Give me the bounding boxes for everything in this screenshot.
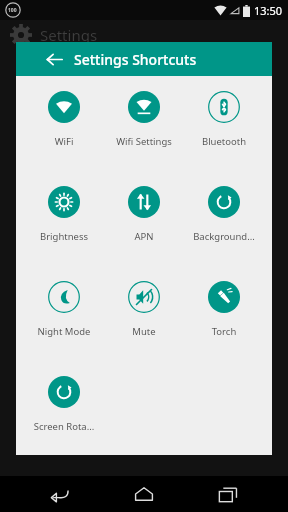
button[interactable]: Mute	[104, 273, 184, 368]
staticText: Screen Rota...	[25, 420, 103, 433]
button[interactable]: Home	[120, 476, 168, 512]
staticText: 13:50	[254, 3, 283, 18]
button[interactable]: Background...	[184, 178, 264, 273]
staticText: Settings Shortcuts	[74, 50, 197, 69]
button[interactable]: Torch	[184, 273, 264, 368]
staticText: Brightness	[25, 230, 103, 243]
button[interactable]: Wifi Settings	[104, 83, 184, 178]
staticText: Settings	[40, 25, 98, 45]
staticText: Night Mode	[25, 325, 103, 338]
staticText: Background...	[185, 230, 263, 243]
button[interactable]: Bluetooth	[184, 83, 264, 178]
staticText: Torch	[185, 325, 263, 338]
button[interactable]: Screen Rota...	[24, 368, 104, 455]
staticText: 100	[8, 7, 17, 14]
button[interactable]: Brightness	[24, 178, 104, 273]
button[interactable]: Recent apps	[204, 476, 252, 512]
staticText: APN	[105, 230, 183, 243]
button[interactable]: Back	[37, 42, 71, 76]
staticText: WiFi	[25, 135, 103, 148]
button[interactable]: APN	[104, 178, 184, 273]
staticText: Wifi Settings	[105, 135, 183, 148]
button[interactable]: WiFi	[24, 83, 104, 178]
staticText: Mute	[105, 325, 183, 338]
button[interactable]: Back	[36, 476, 84, 512]
staticText: Bluetooth	[185, 135, 263, 148]
button[interactable]: Night Mode	[24, 273, 104, 368]
